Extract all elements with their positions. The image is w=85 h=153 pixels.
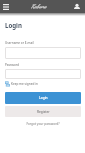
button[interactable]: Account — [72, 1, 82, 11]
staticText: Login — [39, 96, 48, 100]
button[interactable]: Register — [5, 106, 81, 117]
staticText: Username or E-mail — [5, 41, 34, 45]
staticText: Forgot your password? — [26, 122, 60, 126]
button[interactable] — [5, 69, 81, 79]
button[interactable]: Login — [5, 92, 81, 104]
staticText: Password — [5, 63, 19, 67]
button[interactable]: Keep me signed in — [5, 81, 38, 87]
button[interactable]: Menu — [1, 2, 11, 12]
staticText: Keep me signed in — [11, 82, 38, 86]
staticText: Kabana — [31, 3, 47, 10]
staticText: Login — [5, 21, 22, 29]
button[interactable] — [5, 47, 81, 59]
button[interactable]: Forgot your password? — [5, 122, 81, 126]
staticText: Register — [37, 110, 50, 114]
